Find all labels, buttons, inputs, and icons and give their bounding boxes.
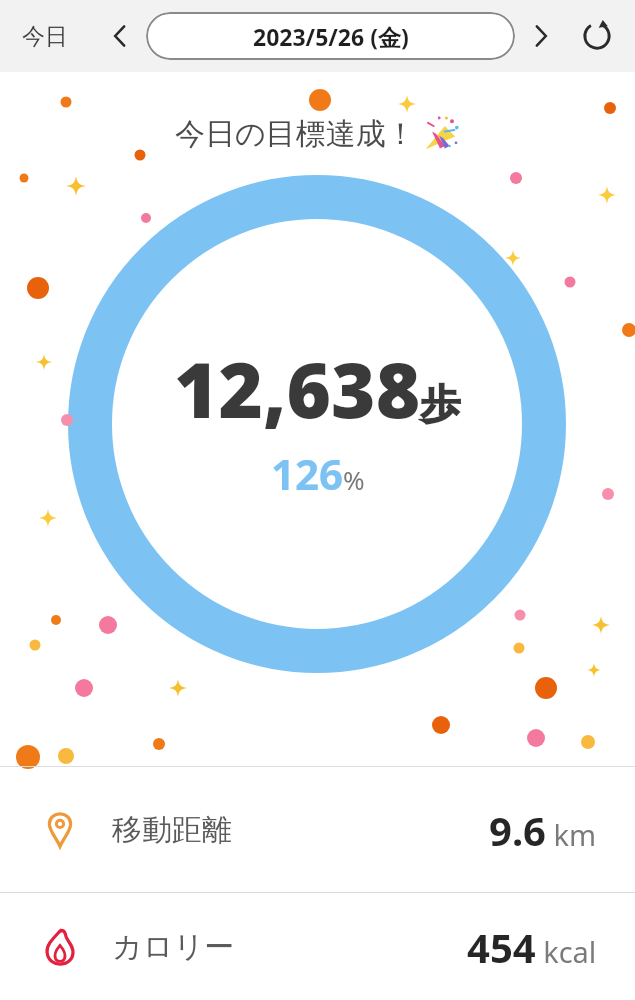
button[interactable]: 移動距離 xyxy=(0,767,635,892)
button[interactable]: 今日 xyxy=(14,16,76,57)
staticText: 今日の目標達成！ xyxy=(175,115,416,153)
staticText: 今日 xyxy=(22,22,68,51)
staticText: 12,638歩 xyxy=(174,337,461,441)
button[interactable]: 更新 xyxy=(573,12,621,60)
staticText: 移動距離 xyxy=(112,811,232,849)
button[interactable]: 2023/5/26 (金) xyxy=(146,12,515,60)
button[interactable]: カロリー xyxy=(0,893,635,1000)
button[interactable]: 翌日 xyxy=(519,14,563,58)
staticText: 454 kcal xyxy=(467,920,597,974)
staticText: 2023/5/26 (金) xyxy=(253,21,409,52)
staticText: 126% xyxy=(271,445,365,502)
staticText: 9.6 km xyxy=(489,803,597,857)
button[interactable]: 前日 xyxy=(98,14,142,58)
staticText: カロリー xyxy=(112,928,235,966)
